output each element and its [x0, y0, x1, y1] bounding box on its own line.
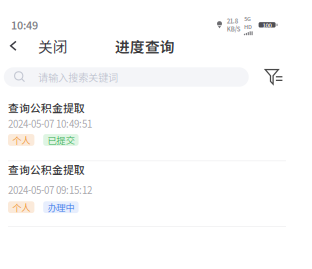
staticText: 5G HD [244, 14, 252, 31]
staticText: 查询公积金提取 [8, 162, 85, 177]
staticText: 办理中 [47, 200, 74, 214]
staticText: 10:49 [11, 17, 38, 32]
button[interactable]: 请输入搜索关键词 [4, 67, 249, 87]
button[interactable]: Filter [259, 66, 289, 88]
button[interactable]: 关闭 [38, 35, 68, 57]
staticText: 2024-05-07 09:15:12 [8, 183, 92, 197]
staticText: 关闭 [38, 35, 68, 57]
staticText: 个人 [12, 200, 30, 214]
staticText: 请输入搜索关键词 [38, 70, 118, 84]
staticText: 查询公积金提取 [8, 100, 85, 115]
staticText: 个人 [12, 133, 30, 147]
button[interactable]: 查询公积金提取 [0, 161, 312, 226]
button[interactable]: Back [3, 35, 24, 57]
button[interactable]: 查询公积金提取 [0, 93, 312, 160]
staticText: 进度查询 [115, 35, 175, 57]
staticText: 2024-05-07 10:49:51 [8, 116, 92, 130]
staticText: 已提交 [47, 133, 74, 147]
staticText: 100 [263, 21, 272, 29]
staticText: KB/S [227, 25, 241, 33]
staticText: 21.8 [227, 16, 238, 25]
